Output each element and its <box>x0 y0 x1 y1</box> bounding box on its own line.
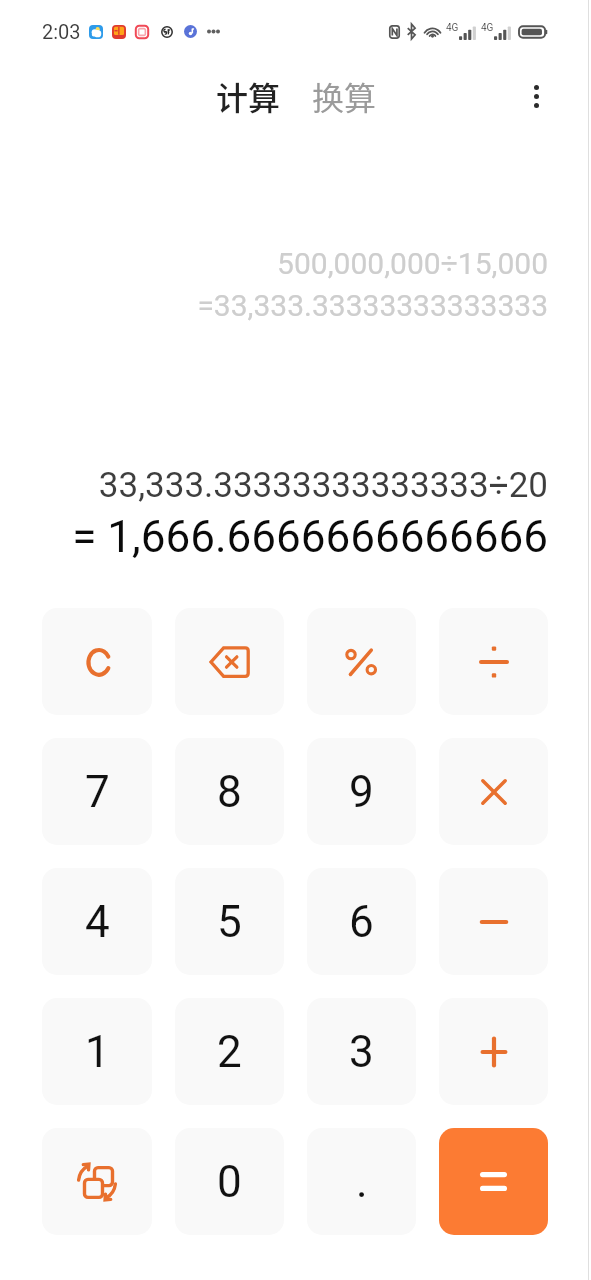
button[interactable]: Unit conversion <box>42 1128 152 1235</box>
staticText: 换算 <box>312 73 377 119</box>
staticText: 0 <box>217 1156 242 1208</box>
button[interactable]: 5 <box>175 868 284 975</box>
button[interactable]: 1 <box>42 998 152 1105</box>
button[interactable]: Clear <box>42 608 152 715</box>
button[interactable]: 4 <box>42 868 152 975</box>
staticText: 9 <box>349 766 374 818</box>
staticText: 5 <box>217 896 242 948</box>
staticText: 33,333.33333333333333÷20 <box>0 465 548 506</box>
staticText: 4G <box>446 22 459 34</box>
button[interactable]: Backspace <box>175 608 284 715</box>
button[interactable]: Equals <box>439 1128 548 1235</box>
staticText: 6 <box>349 896 374 948</box>
staticText: . <box>356 1156 368 1208</box>
staticText: =33,333.33333333333333 <box>0 288 548 323</box>
button[interactable]: Divide <box>439 608 548 715</box>
button[interactable]: More options <box>512 72 560 120</box>
staticText: 2 <box>217 1026 242 1078</box>
button[interactable]: 9 <box>307 738 416 845</box>
staticText: 2:03 <box>42 20 81 43</box>
staticText: 7 <box>85 766 110 818</box>
staticText: = 1,666.6666666666666 <box>0 511 548 563</box>
staticText: 8 <box>217 766 242 818</box>
button[interactable]: Plus <box>439 998 548 1105</box>
button[interactable]: Multiply <box>439 738 548 845</box>
button[interactable]: Percent <box>307 608 416 715</box>
staticText: 1 <box>85 1026 110 1078</box>
staticText: 3 <box>349 1026 374 1078</box>
staticText: 500,000,000÷15,000 <box>0 246 548 281</box>
button[interactable]: 2 <box>175 998 284 1105</box>
button[interactable]: . <box>307 1128 416 1235</box>
button[interactable]: 0 <box>175 1128 284 1235</box>
staticText: 计算 <box>216 73 281 119</box>
button[interactable]: 8 <box>175 738 284 845</box>
staticText: 4G <box>481 22 494 34</box>
staticText: 4 <box>85 896 110 948</box>
button[interactable]: 6 <box>307 868 416 975</box>
button[interactable]: 换算 <box>304 65 385 127</box>
button[interactable]: 计算 <box>208 65 289 127</box>
button[interactable]: 3 <box>307 998 416 1105</box>
button[interactable]: Minus <box>439 868 548 975</box>
button[interactable]: 7 <box>42 738 152 845</box>
